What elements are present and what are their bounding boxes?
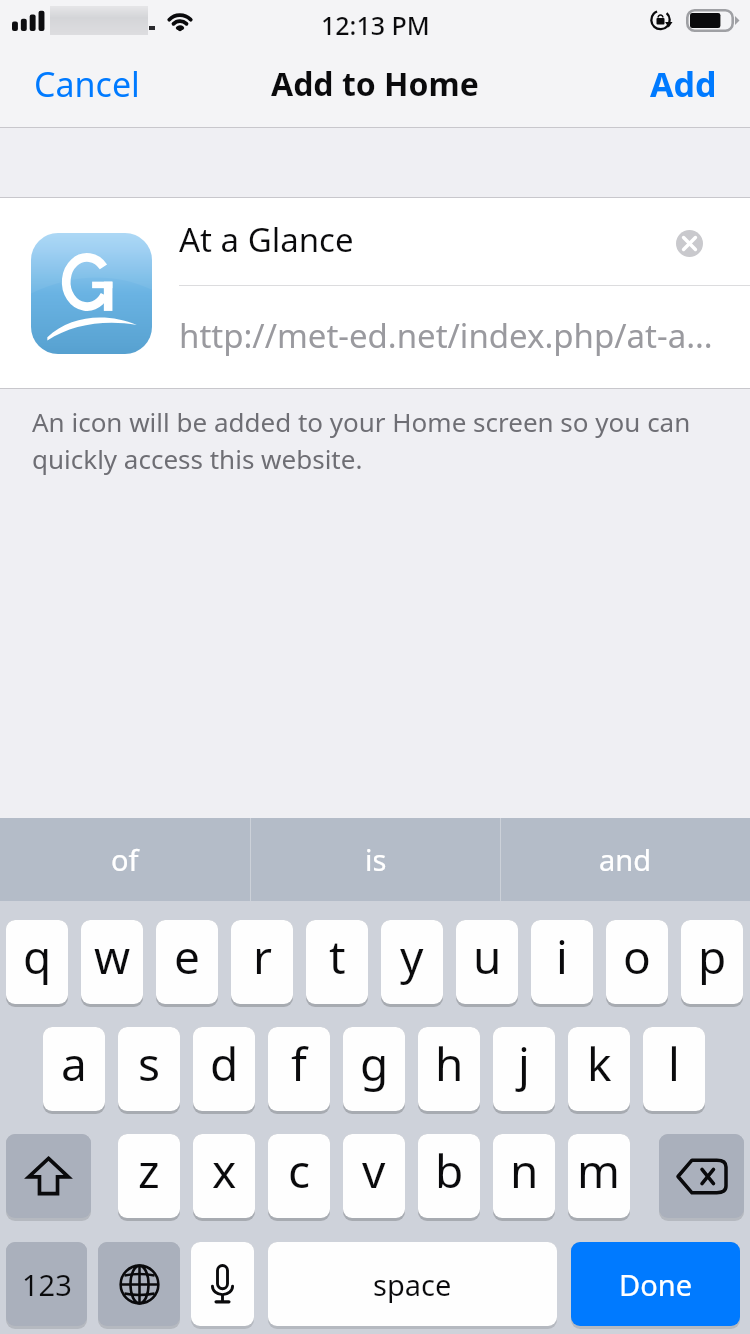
staticText: l [668,1032,680,1095]
button[interactable]: of [0,818,250,901]
staticText: k [587,1032,612,1095]
staticText: a [61,1032,87,1095]
staticText: q [23,925,52,988]
button[interactable]: p [681,920,743,1004]
staticText: i [556,925,568,988]
staticText: 12:13 PM [321,8,430,42]
button[interactable]: Cancel [0,47,162,121]
staticText: of [111,840,139,879]
staticText: r [253,925,272,988]
staticText: w [94,925,131,988]
staticText: o [623,925,651,988]
button[interactable]: t [306,920,368,1004]
button[interactable]: r [231,920,293,1004]
button[interactable]: 123 [6,1242,87,1326]
button[interactable]: f [268,1027,330,1111]
button[interactable]: c [268,1134,330,1218]
button[interactable]: At a Glance [179,198,649,281]
staticText: s [138,1032,161,1095]
button[interactable]: and [501,818,750,901]
button[interactable]: z [118,1134,180,1218]
button[interactable]: g [343,1027,405,1111]
button[interactable]: e [156,920,218,1004]
staticText: h [435,1032,464,1095]
staticText: Add [650,61,717,107]
staticText: Done [619,1265,692,1304]
button[interactable]: j [493,1027,555,1111]
staticText: An icon will be added to your Home scree… [32,404,691,477]
button[interactable]: o [606,920,668,1004]
staticText: u [473,925,502,988]
button[interactable]: y [381,920,443,1004]
button[interactable]: Backspace [659,1134,744,1218]
staticText: b [435,1139,464,1202]
staticText: space [373,1265,452,1304]
button[interactable]: a [43,1027,105,1111]
staticText: f [291,1032,307,1095]
button[interactable]: w [81,920,143,1004]
staticText: v [362,1139,386,1202]
button[interactable]: Add [628,47,750,121]
staticText: z [138,1139,160,1202]
button[interactable]: Dictation [191,1242,254,1326]
staticText: is [365,840,387,879]
button[interactable]: i [531,920,593,1004]
staticText: g [360,1032,389,1095]
button[interactable]: d [193,1027,255,1111]
staticText: http://met-ed.net/index.php/at-a... [179,313,713,358]
staticText: c [288,1139,311,1202]
staticText: m [577,1139,621,1202]
staticText: n [510,1139,539,1202]
button[interactable]: n [493,1134,555,1218]
button[interactable]: Next keyboard [98,1242,180,1326]
button[interactable]: u [456,920,518,1004]
staticText: At a Glance [179,217,354,262]
button[interactable]: b [418,1134,480,1218]
button[interactable]: Clear text [659,213,719,273]
staticText: p [698,925,727,988]
button[interactable]: x [193,1134,255,1218]
button[interactable]: h [418,1027,480,1111]
staticText: x [212,1139,237,1202]
button[interactable]: q [6,920,68,1004]
button[interactable]: m [568,1134,630,1218]
staticText: e [174,925,200,988]
button[interactable]: s [118,1027,180,1111]
staticText: j [518,1032,530,1095]
button[interactable]: v [343,1134,405,1218]
button[interactable]: http://met-ed.net/index.php/at-a... [179,286,739,388]
button[interactable]: l [643,1027,705,1111]
staticText: y [400,925,424,988]
staticText: 123 [22,1265,72,1304]
button[interactable]: is [251,818,500,901]
staticText: d [210,1032,239,1095]
staticText: and [599,840,652,879]
button[interactable]: Done [571,1242,740,1326]
button[interactable]: k [568,1027,630,1111]
staticText: t [329,925,346,988]
staticText: Add to Home [271,62,479,106]
staticText: Cancel [34,61,140,107]
button[interactable]: space [268,1242,557,1326]
button[interactable]: Shift [6,1134,91,1218]
